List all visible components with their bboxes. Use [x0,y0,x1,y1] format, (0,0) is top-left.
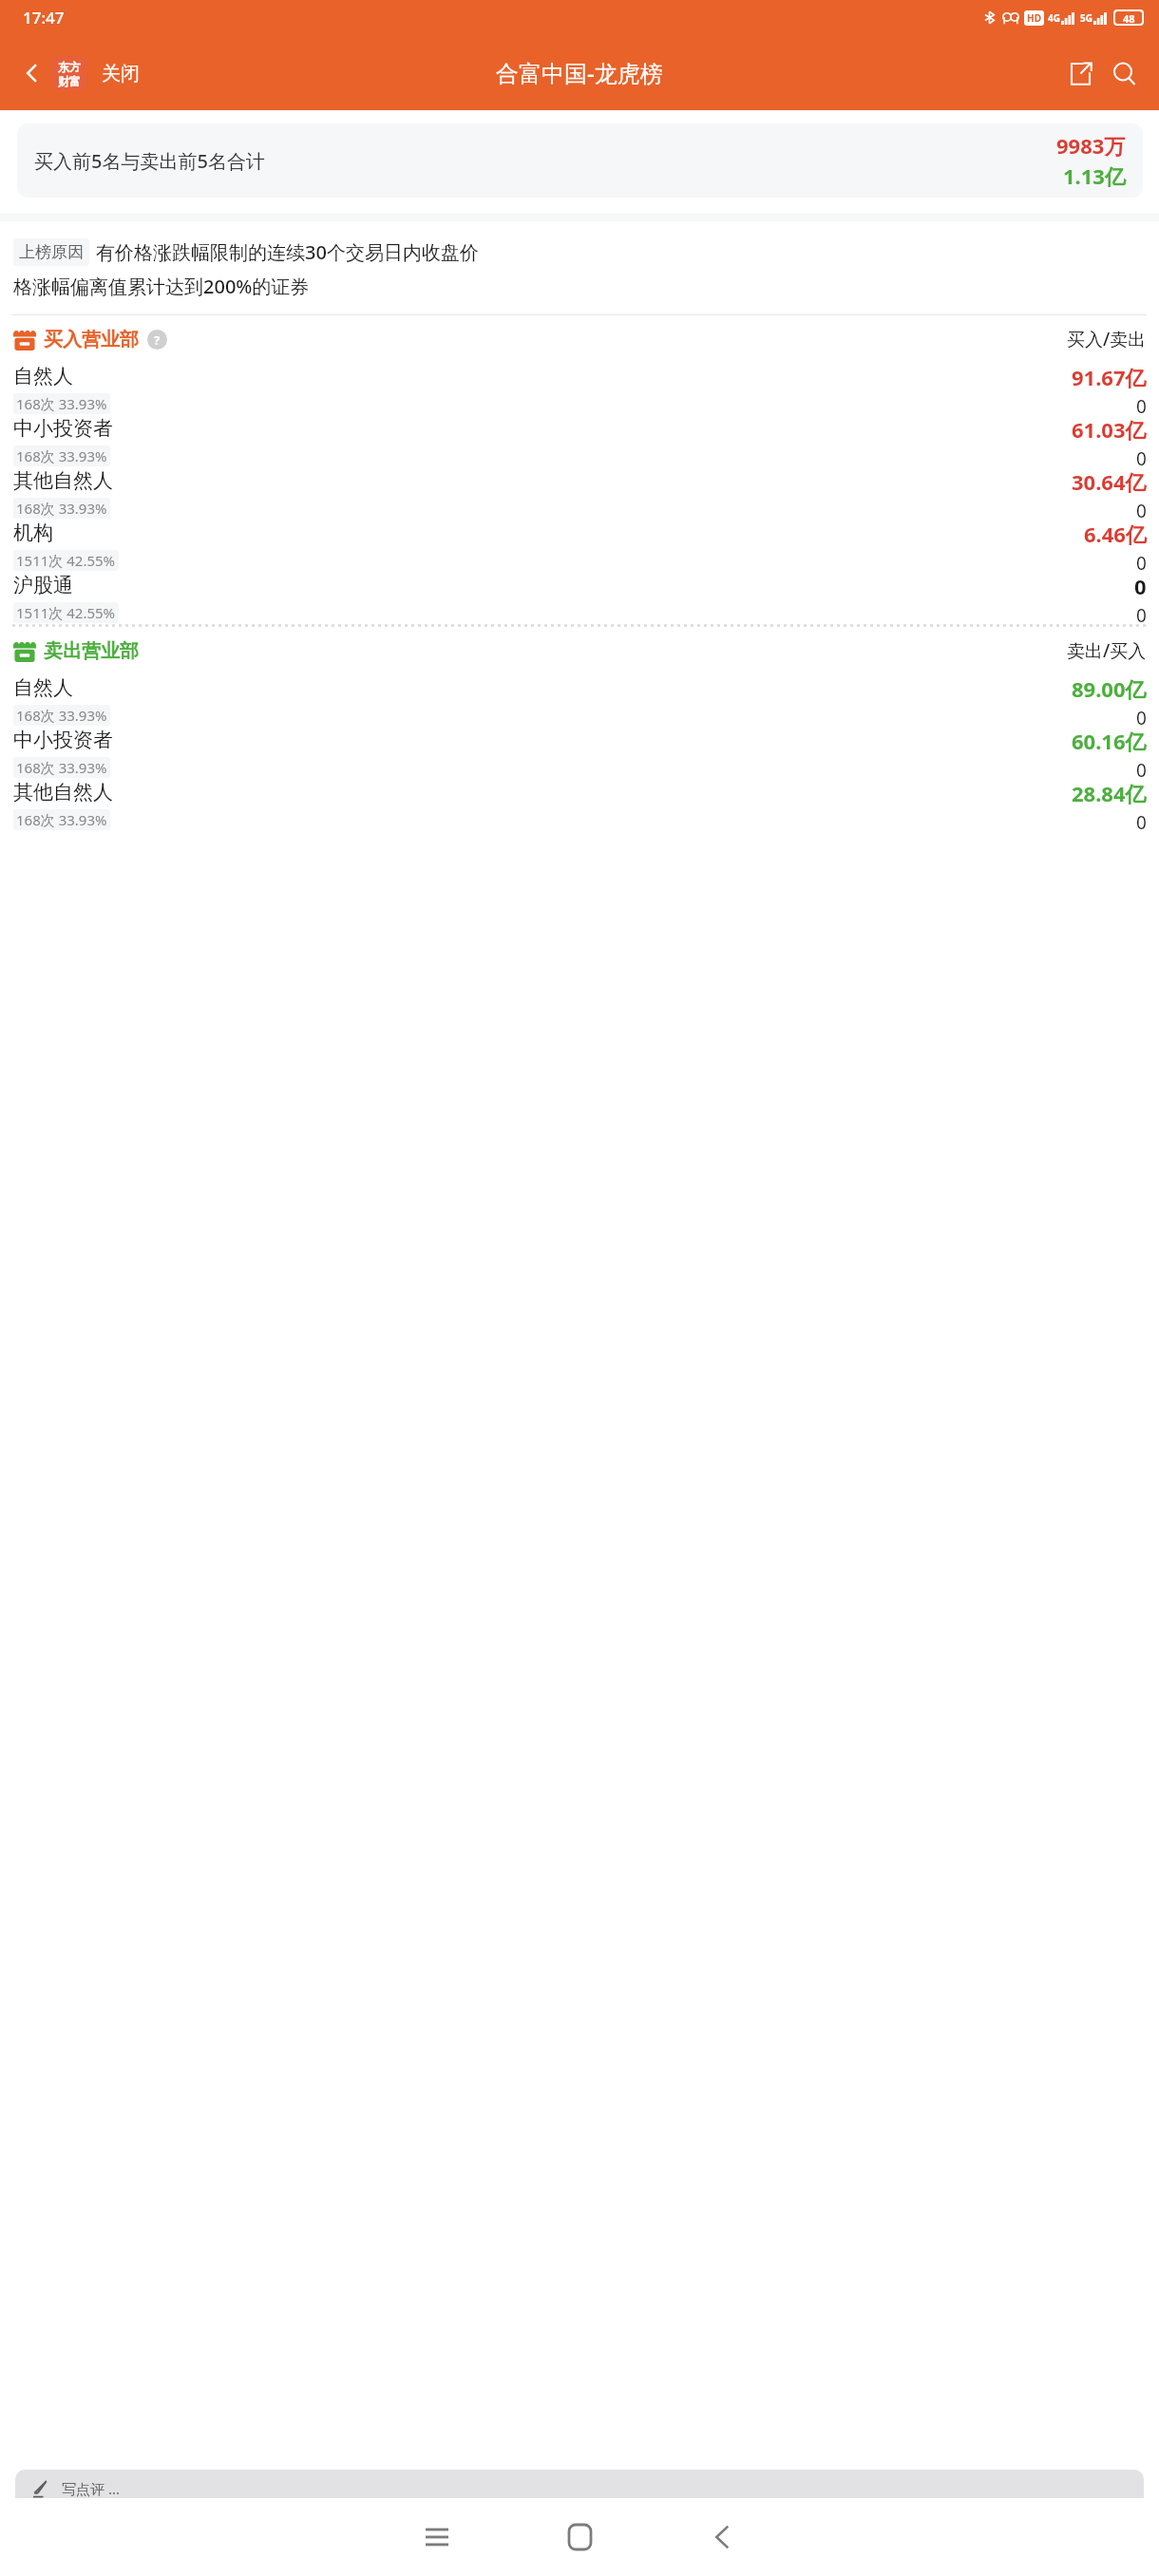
staticText: 关闭 [102,62,140,85]
staticText: 0 [1136,810,1147,831]
button[interactable]: Back [13,54,51,92]
staticText: 买入营业部 [44,328,139,351]
staticText: 89.00亿 [1072,674,1147,703]
staticText: 0 [1136,446,1147,467]
staticText: 168次 33.93% [16,446,107,465]
staticText: 61.03亿 [1072,415,1147,444]
staticText: 60.16亿 [1072,727,1147,755]
button[interactable]: 其他自然人 [13,467,1147,520]
staticText: 1511次 42.55% [16,551,116,570]
button[interactable]: 自然人 [13,363,1147,415]
staticText: ? [154,331,161,349]
staticText: 东方 [58,60,81,74]
button[interactable]: 自然人 [13,674,1147,727]
staticText: 格涨幅偏离值累计达到200%的证券 [13,274,310,299]
staticText: 91.67亿 [1072,363,1147,391]
staticText: 沪股通 [13,573,73,597]
staticText: 买入/卖出 [1067,327,1147,351]
staticText: 中小投资者 [13,416,113,441]
button[interactable]: 买入前5名与卖出前5名合计 [17,123,1143,198]
staticText: 0 [1134,572,1147,600]
button[interactable]: Back [651,2498,793,2576]
staticText: 17:47 [23,7,65,28]
staticText: 其他自然人 [13,780,113,805]
button[interactable]: 沪股通 [13,572,1147,624]
button[interactable]: 买入营业部 [13,315,1147,363]
staticText: 自然人 [13,675,73,700]
staticText: 168次 33.93% [16,706,107,725]
button[interactable]: Recent apps [366,2498,508,2576]
staticText: 5G [1080,11,1092,25]
staticText: 机构 [13,521,53,545]
staticText: 卖出/买入 [1067,638,1147,663]
staticText: 168次 33.93% [16,394,107,413]
staticText: 28.84亿 [1072,779,1147,807]
button[interactable]: Share [1058,51,1102,95]
staticText: HD [1027,11,1041,25]
button[interactable]: 卖出营业部 [13,627,1147,674]
staticText: 30.64亿 [1072,467,1147,496]
button[interactable]: 写点评 ... [15,2470,1144,2508]
staticText: 自然人 [13,364,73,388]
button[interactable]: Help [147,330,167,350]
staticText: 168次 33.93% [16,758,107,777]
button[interactable]: 中小投资者 [13,415,1147,467]
staticText: 0 [1136,758,1147,779]
staticText: 9983万 [1056,131,1126,160]
staticText: 168次 33.93% [16,810,107,829]
staticText: 财富 [58,74,81,88]
staticText: 0 [1136,551,1147,572]
staticText: 6.46亿 [1084,520,1147,548]
staticText: 上榜原因 [19,242,84,262]
button[interactable]: 关闭 [98,58,143,89]
staticText: 中小投资者 [13,728,113,752]
staticText: 有价格涨跌幅限制的连续30个交易日内收盘价 [96,239,479,265]
staticText: 168次 33.93% [16,499,107,518]
staticText: 4G [1048,11,1060,25]
staticText: 0 [1136,499,1147,520]
button[interactable]: Search [1102,51,1146,95]
staticText: 卖出营业部 [44,639,139,663]
staticText: 48 [1123,11,1135,24]
button[interactable]: 东方财富 [51,56,86,91]
staticText: 0 [1136,603,1147,624]
staticText: 1511次 42.55% [16,603,116,622]
button[interactable]: 其他自然人 [13,779,1147,831]
staticText: 合富中国-龙虎榜 [496,57,663,88]
staticText: 0 [1136,706,1147,727]
staticText: 1.13亿 [1063,161,1126,190]
staticText: 其他自然人 [13,468,113,493]
button[interactable]: 机构 [13,520,1147,572]
staticText: 买入前5名与卖出前5名合计 [34,148,265,174]
button[interactable]: 中小投资者 [13,727,1147,779]
staticText: 写点评 ... [62,2479,120,2498]
staticText: 0 [1136,394,1147,415]
button[interactable]: Home [508,2498,651,2576]
